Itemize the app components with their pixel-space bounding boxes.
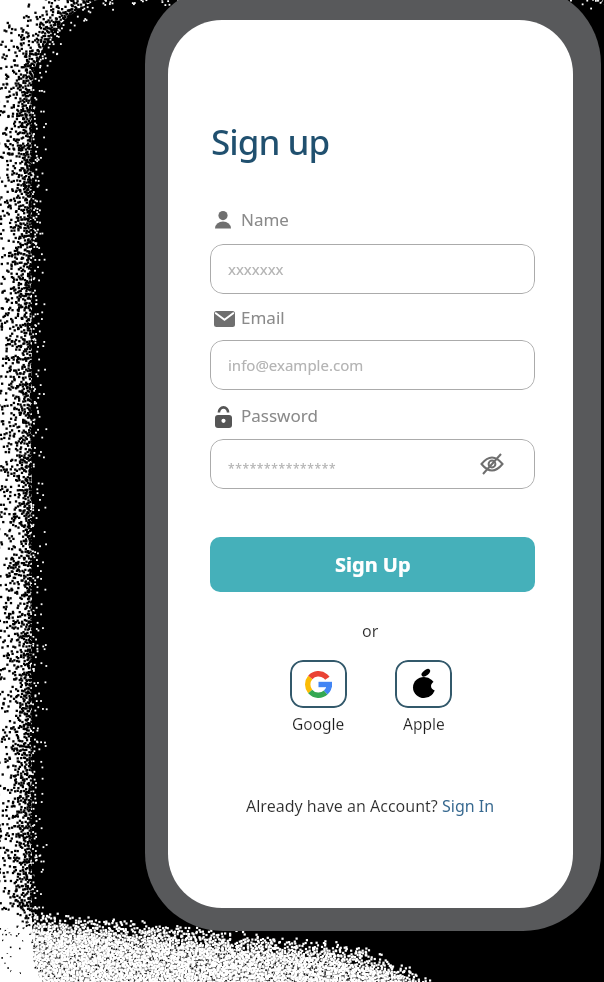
staticText: Apple — [403, 713, 445, 734]
button[interactable]: xxxxxxx — [210, 244, 535, 294]
button[interactable]: *************** — [210, 439, 535, 489]
staticText: Password — [241, 404, 318, 427]
staticText: or — [362, 620, 379, 642]
button[interactable] — [290, 660, 347, 708]
button[interactable]: Sign In — [442, 795, 495, 817]
staticText: info@example.com — [228, 355, 364, 375]
staticText: Name — [241, 208, 289, 231]
button[interactable] — [395, 660, 452, 708]
staticText: *************** — [228, 460, 337, 476]
staticText: Email — [241, 306, 285, 329]
staticText: Google — [292, 713, 345, 734]
button[interactable]: info@example.com — [210, 340, 535, 390]
staticText: Sign up — [211, 118, 330, 166]
staticText: Sign Up — [335, 551, 411, 578]
button[interactable] — [479, 454, 505, 474]
button[interactable]: Sign Up — [210, 537, 535, 592]
staticText: xxxxxxx — [228, 259, 284, 279]
staticText: Already have an Account? — [246, 795, 442, 817]
